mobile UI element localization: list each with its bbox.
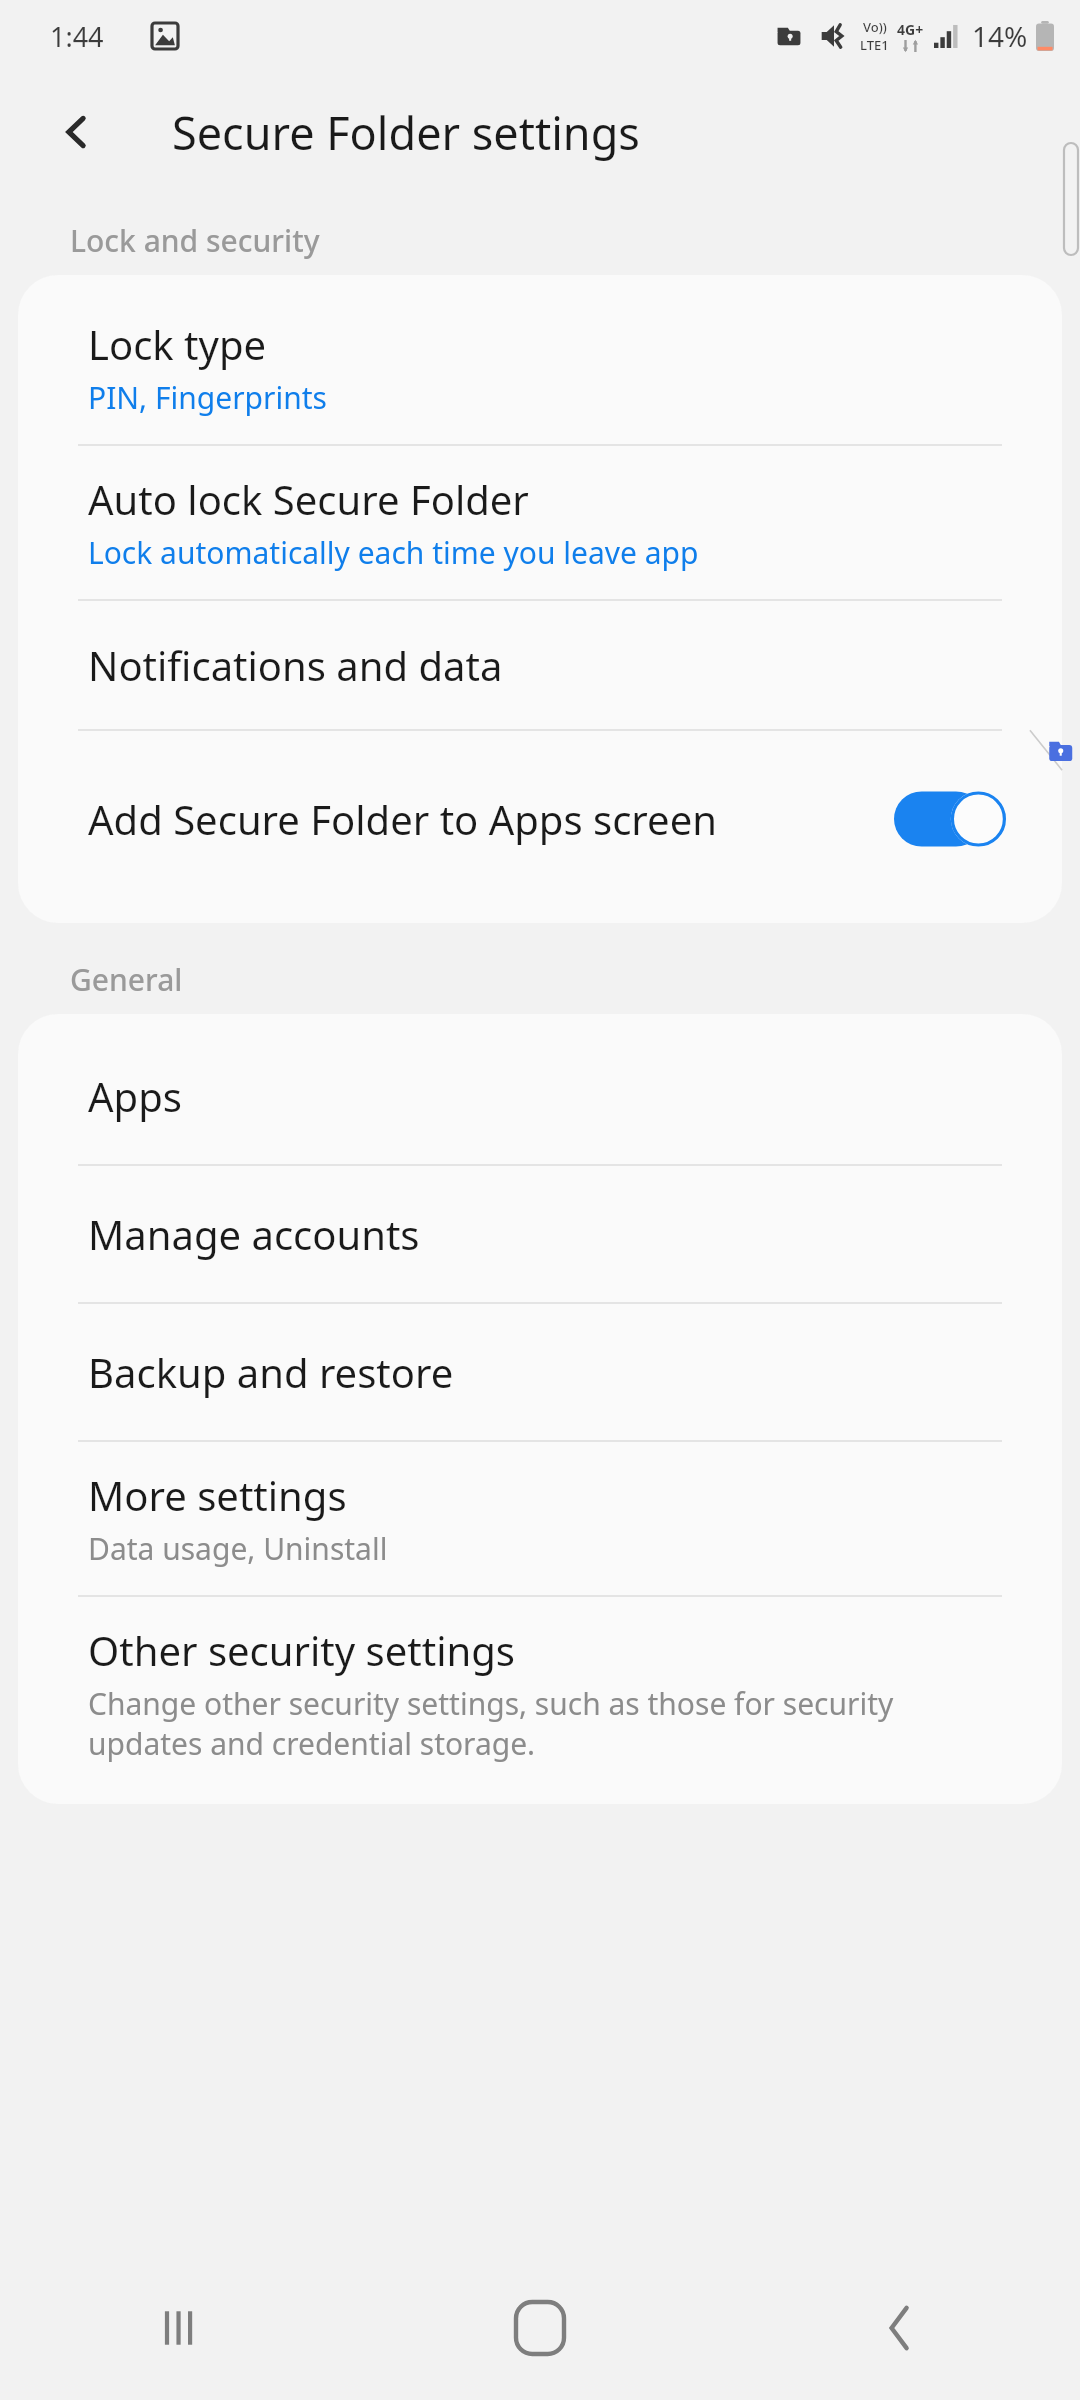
button[interactable]: Manage accounts xyxy=(18,1166,1062,1302)
staticText: Notifications and data xyxy=(88,638,503,692)
button[interactable]: More settings xyxy=(18,1442,1062,1595)
button[interactable]: Backup and restore xyxy=(18,1304,1062,1440)
staticText: 14% xyxy=(972,17,1028,55)
button[interactable]: Notifications and data xyxy=(18,601,1062,729)
staticText: Lock and security xyxy=(70,220,320,261)
button[interactable]: Add Secure Folder to Apps screen xyxy=(18,731,1062,907)
button[interactable]: Back xyxy=(44,99,110,165)
staticText: Apps xyxy=(88,1069,182,1123)
button[interactable]: Other security settings xyxy=(18,1597,1062,1790)
staticText: 1:44 xyxy=(50,18,104,55)
button[interactable]: Apps xyxy=(18,1028,1062,1164)
button[interactable]: Add Secure Folder to Apps screen toggle xyxy=(894,789,1006,849)
staticText: 4G+ xyxy=(897,20,924,39)
staticText: Secure Folder settings xyxy=(172,102,640,163)
staticText: Add Secure Folder to Apps screen xyxy=(88,792,717,846)
button[interactable]: Recent apps xyxy=(0,2255,360,2400)
staticText: Lock type xyxy=(88,317,267,371)
button[interactable]: Home xyxy=(360,2255,720,2400)
staticText: PIN, Fingerprints xyxy=(88,377,327,418)
button[interactable]: Auto lock Secure Folder xyxy=(18,446,1062,599)
staticText: General xyxy=(70,959,183,1000)
staticText: Auto lock Secure Folder xyxy=(88,472,529,526)
staticText: Data usage, Uninstall xyxy=(88,1528,388,1569)
staticText: LTE1 xyxy=(860,36,889,54)
staticText: More settings xyxy=(88,1468,347,1522)
staticText: Manage accounts xyxy=(88,1207,420,1261)
staticText: Backup and restore xyxy=(88,1345,454,1399)
button[interactable]: Lock type xyxy=(18,291,1062,444)
staticText: Change other security settings, such as … xyxy=(88,1683,1006,1764)
staticText: Lock automatically each time you leave a… xyxy=(88,532,699,573)
button[interactable]: Back xyxy=(720,2255,1080,2400)
staticText: Vo)) xyxy=(863,18,887,36)
staticText: Other security settings xyxy=(88,1623,515,1677)
